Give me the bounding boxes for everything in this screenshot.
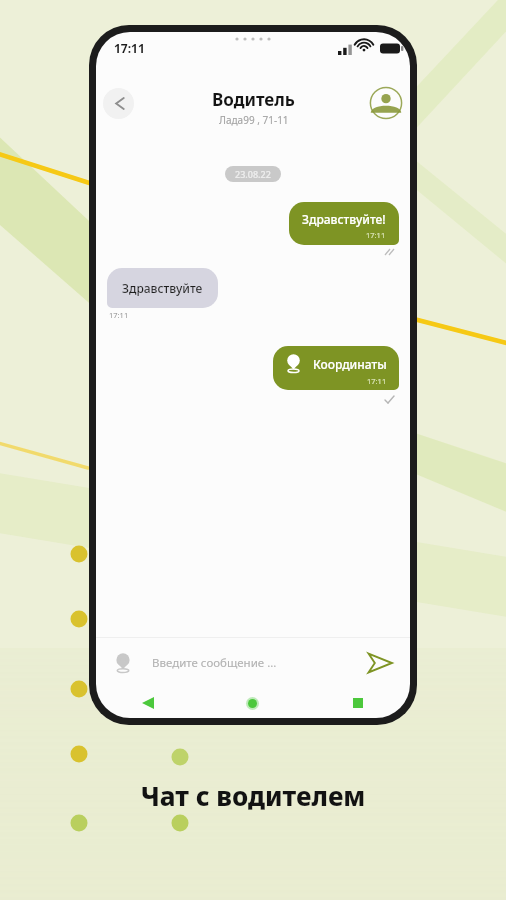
staticText: Введите сообщение ... (152, 655, 277, 671)
staticText: 17:11 (366, 230, 386, 240)
staticText: 23.08.22 (235, 168, 271, 180)
staticText: Чат с водителем (0, 778, 506, 813)
button[interactable]: Recents (305, 688, 410, 718)
button[interactable]: Введите сообщение ... (152, 655, 356, 671)
button[interactable]: Back (103, 88, 134, 119)
staticText: 17:11 (114, 40, 145, 56)
button[interactable]: Profile (369, 86, 403, 120)
button[interactable]: Координаты (273, 346, 399, 390)
staticText: Водитель (212, 88, 295, 111)
staticText: Координаты (313, 356, 387, 372)
staticText: Здравствуйте! (302, 211, 386, 227)
staticText: 17:11 (367, 376, 387, 386)
button[interactable]: Здравствуйте! (289, 202, 399, 245)
button[interactable]: Send (364, 647, 396, 679)
button[interactable]: Attach location (108, 648, 138, 678)
button[interactable]: Back (96, 688, 200, 718)
button[interactable]: Здравствуйте (107, 268, 218, 308)
staticText: 17:11 (109, 310, 129, 320)
staticText: Здравствуйте (122, 280, 203, 296)
button[interactable]: Home (200, 688, 305, 718)
staticText: Лада99 , 71-11 (219, 113, 289, 127)
